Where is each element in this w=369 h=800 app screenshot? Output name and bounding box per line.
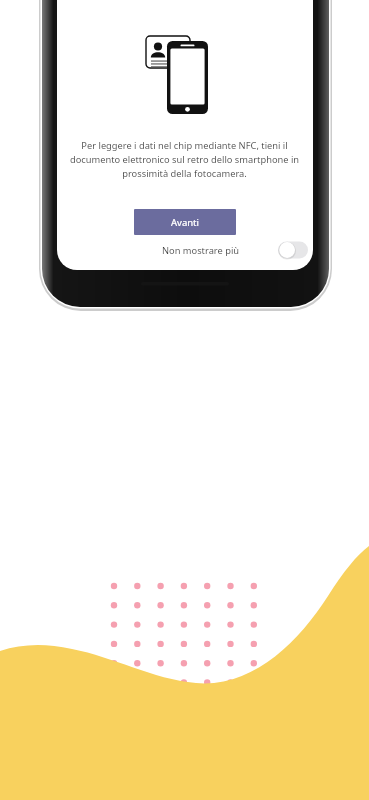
button[interactable] <box>134 209 236 235</box>
button[interactable]: Non mostrare più <box>160 238 308 262</box>
